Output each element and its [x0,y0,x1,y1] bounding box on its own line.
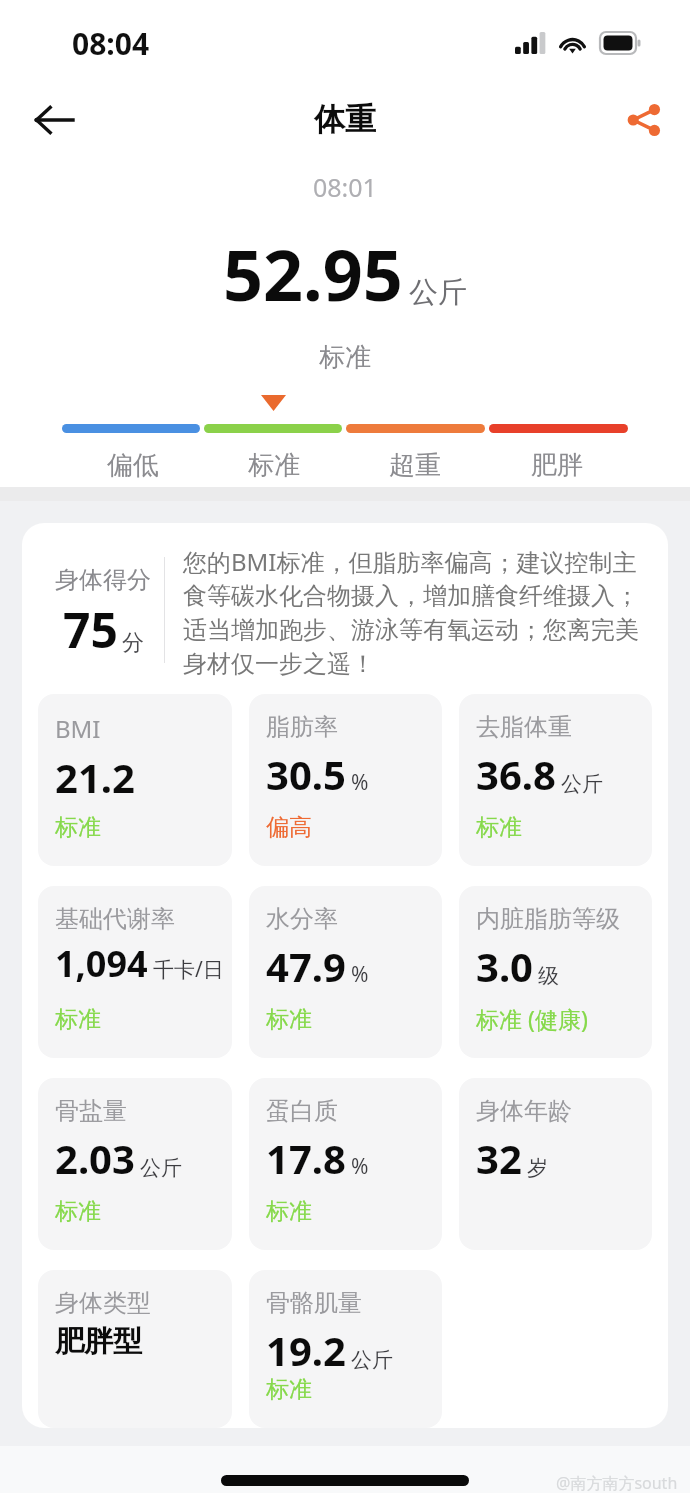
staticText: 08:01 [313,170,377,204]
staticText: 公斤 [409,274,467,311]
button[interactable]: 内脏脂肪等级 [459,886,652,1058]
staticText: 分 [122,629,144,657]
staticText: % [351,1152,369,1181]
staticText: 标准 [55,813,101,842]
button[interactable]: 骨盐量 [38,1078,232,1250]
staticText: 公斤 [351,1347,393,1373]
staticText: 公斤 [561,771,603,797]
staticText: 标准 [266,1375,312,1404]
staticText: 17.8 [266,1131,346,1185]
staticText: 32 [476,1131,522,1185]
staticText: 肥胖型 [55,1323,142,1360]
button[interactable]: 身体类型 [38,1270,232,1428]
staticText: 19.2 [266,1323,346,1377]
staticText: 体重 [314,100,376,139]
staticText: 标准 [319,341,371,374]
staticText: % [351,768,369,797]
staticText: 偏低 [107,449,159,482]
staticText: 身体得分 [55,565,151,595]
staticText: 2.03 [55,1131,135,1185]
button[interactable]: Share [612,88,676,152]
staticText: 21.2 [55,750,135,804]
staticText: 标准 [55,1005,101,1034]
staticText: @南方南方south [556,1472,678,1493]
staticText: 标准 [476,813,522,842]
staticText: 去脂体重 [476,712,572,742]
staticText: 47.9 [266,939,346,993]
staticText: 标准 [248,449,300,482]
staticText: 身体年龄 [476,1096,572,1126]
button[interactable]: BMI [38,694,232,866]
staticText: 偏高 [266,813,312,842]
staticText: 75 [63,597,118,662]
staticText: 标准 [266,1005,312,1034]
staticText: 1,094 [55,939,148,988]
staticText: 52.95 [223,226,403,321]
button[interactable]: Back [18,84,90,156]
staticText: 超重 [389,449,441,482]
staticText: BMI [55,712,101,745]
staticText: % [351,960,369,989]
button[interactable]: 基础代谢率 [38,886,232,1058]
staticText: 3.0 [476,939,533,993]
staticText: 公斤 [140,1155,182,1181]
staticText: 水分率 [266,904,338,934]
staticText: 基础代谢率 [55,904,175,934]
staticText: 蛋白质 [266,1096,338,1126]
staticText: 骨骼肌量 [266,1288,362,1318]
staticText: 36.8 [476,747,556,801]
staticText: 脂肪率 [266,712,338,742]
button[interactable]: 水分率 [249,886,442,1058]
staticText: 30.5 [266,747,346,801]
staticText: 肥胖 [531,449,583,482]
staticText: 岁 [527,1155,548,1181]
staticText: 标准 [55,1197,101,1226]
staticText: 身体类型 [55,1288,151,1318]
button[interactable]: 蛋白质 [249,1078,442,1250]
staticText: 您的BMI标准，但脂肪率偏高；建议控制主食等碳水化合物摄入，增加膳食纤维摄入；适… [183,545,642,680]
staticText: 标准 (健康) [476,1003,588,1034]
staticText: 千卡/日 [153,955,224,984]
staticText: 级 [538,963,559,989]
staticText: 标准 [266,1197,312,1226]
button[interactable]: 身体年龄 [459,1078,652,1250]
button[interactable]: 去脂体重 [459,694,652,866]
staticText: 08:04 [72,23,150,64]
staticText: 骨盐量 [55,1096,127,1126]
staticText: 内脏脂肪等级 [476,904,620,934]
button[interactable]: 骨骼肌量 [249,1270,442,1428]
button[interactable]: 脂肪率 [249,694,442,866]
